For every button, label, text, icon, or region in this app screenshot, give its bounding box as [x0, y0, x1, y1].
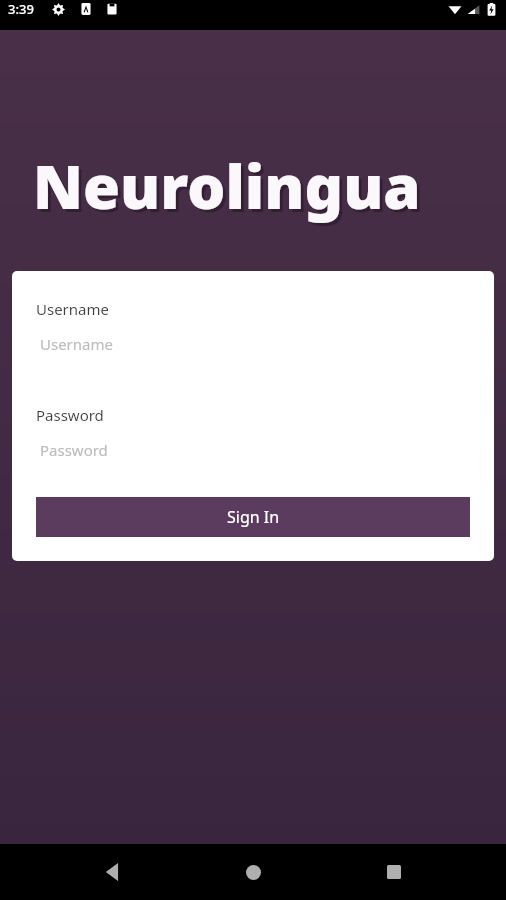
staticText: Sign In — [227, 506, 280, 528]
button[interactable]: Password — [36, 439, 470, 461]
button[interactable]: Username — [36, 333, 470, 355]
staticText: Neurolingua — [36, 148, 424, 230]
staticText: Username — [40, 334, 113, 354]
staticText: Password — [40, 440, 108, 460]
button[interactable]: Sign In — [36, 497, 470, 537]
button[interactable]: Back — [85, 844, 141, 900]
staticText: Password — [36, 405, 104, 425]
staticText: 3:39 — [8, 0, 34, 18]
button[interactable]: Recent apps — [366, 844, 422, 900]
button[interactable]: Home — [225, 844, 281, 900]
staticText: Username — [36, 299, 109, 319]
staticText: Neurolingua — [33, 145, 421, 227]
